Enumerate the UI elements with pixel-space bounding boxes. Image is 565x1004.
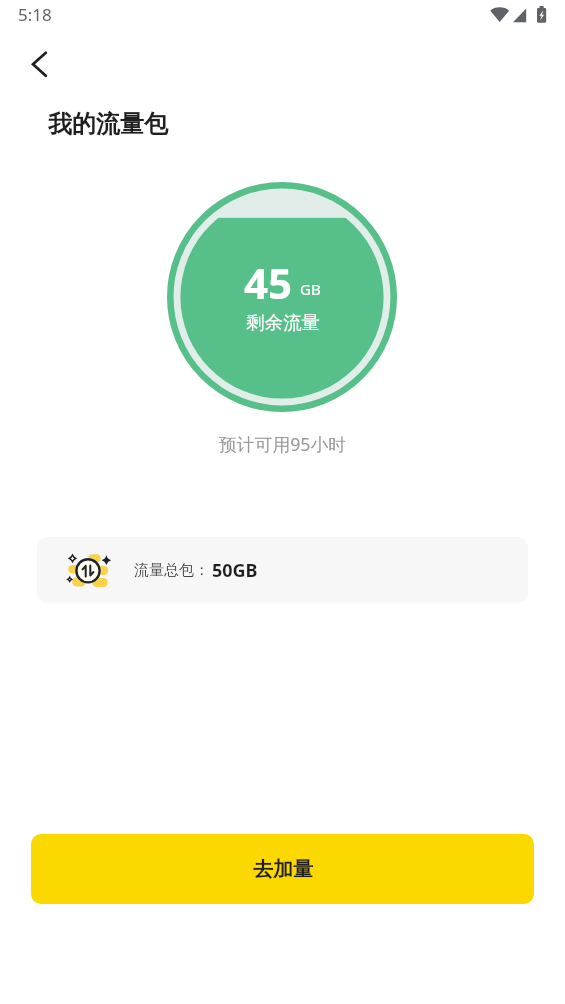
staticText: GB <box>300 279 321 299</box>
staticText: 去加量 <box>253 857 313 882</box>
staticText: 我的流量包 <box>48 109 168 139</box>
staticText: 预计可用95小时 <box>219 432 347 456</box>
staticText: 50GB <box>212 558 258 583</box>
button[interactable]: Back <box>18 42 62 86</box>
staticText: 5:18 <box>18 3 52 26</box>
button[interactable]: 去加量 <box>31 834 534 904</box>
button[interactable]: 流量总包： <box>37 537 528 603</box>
staticText: 流量总包： <box>134 561 209 580</box>
staticText: 45 <box>244 254 293 311</box>
staticText: 剩余流量 <box>246 311 320 334</box>
